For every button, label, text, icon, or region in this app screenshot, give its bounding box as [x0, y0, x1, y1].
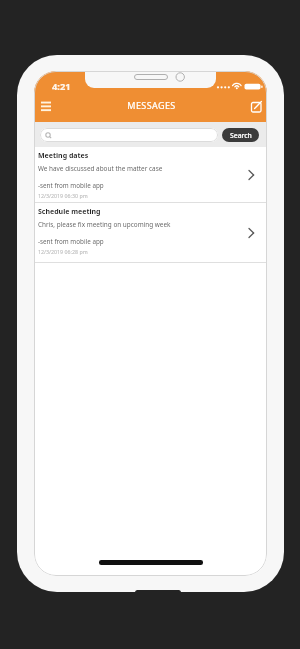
button[interactable]: Meeting dates	[34, 147, 267, 203]
staticText: Meeting dates	[38, 151, 89, 161]
button[interactable]	[40, 128, 218, 142]
button[interactable]	[247, 97, 266, 116]
staticText: Chris, please fix meeting on upcoming we…	[38, 220, 171, 229]
button[interactable]: Schedule meeting	[34, 203, 267, 263]
staticText: Search	[230, 131, 252, 140]
staticText: -sent from mobile app	[38, 181, 104, 190]
button[interactable]: Search	[222, 128, 259, 142]
staticText: -sent from mobile app	[38, 237, 104, 246]
staticText: 4:21	[52, 80, 71, 93]
staticText: MESSAGES	[35, 99, 267, 111]
staticText: We have discussed about the matter case	[38, 164, 163, 173]
staticText: Schedule meeting	[38, 207, 101, 217]
staticText: 12/3/2019 06:30 pm	[38, 192, 88, 199]
button[interactable]	[36, 96, 56, 116]
staticText: 12/3/2019 06:28 pm	[38, 248, 88, 255]
